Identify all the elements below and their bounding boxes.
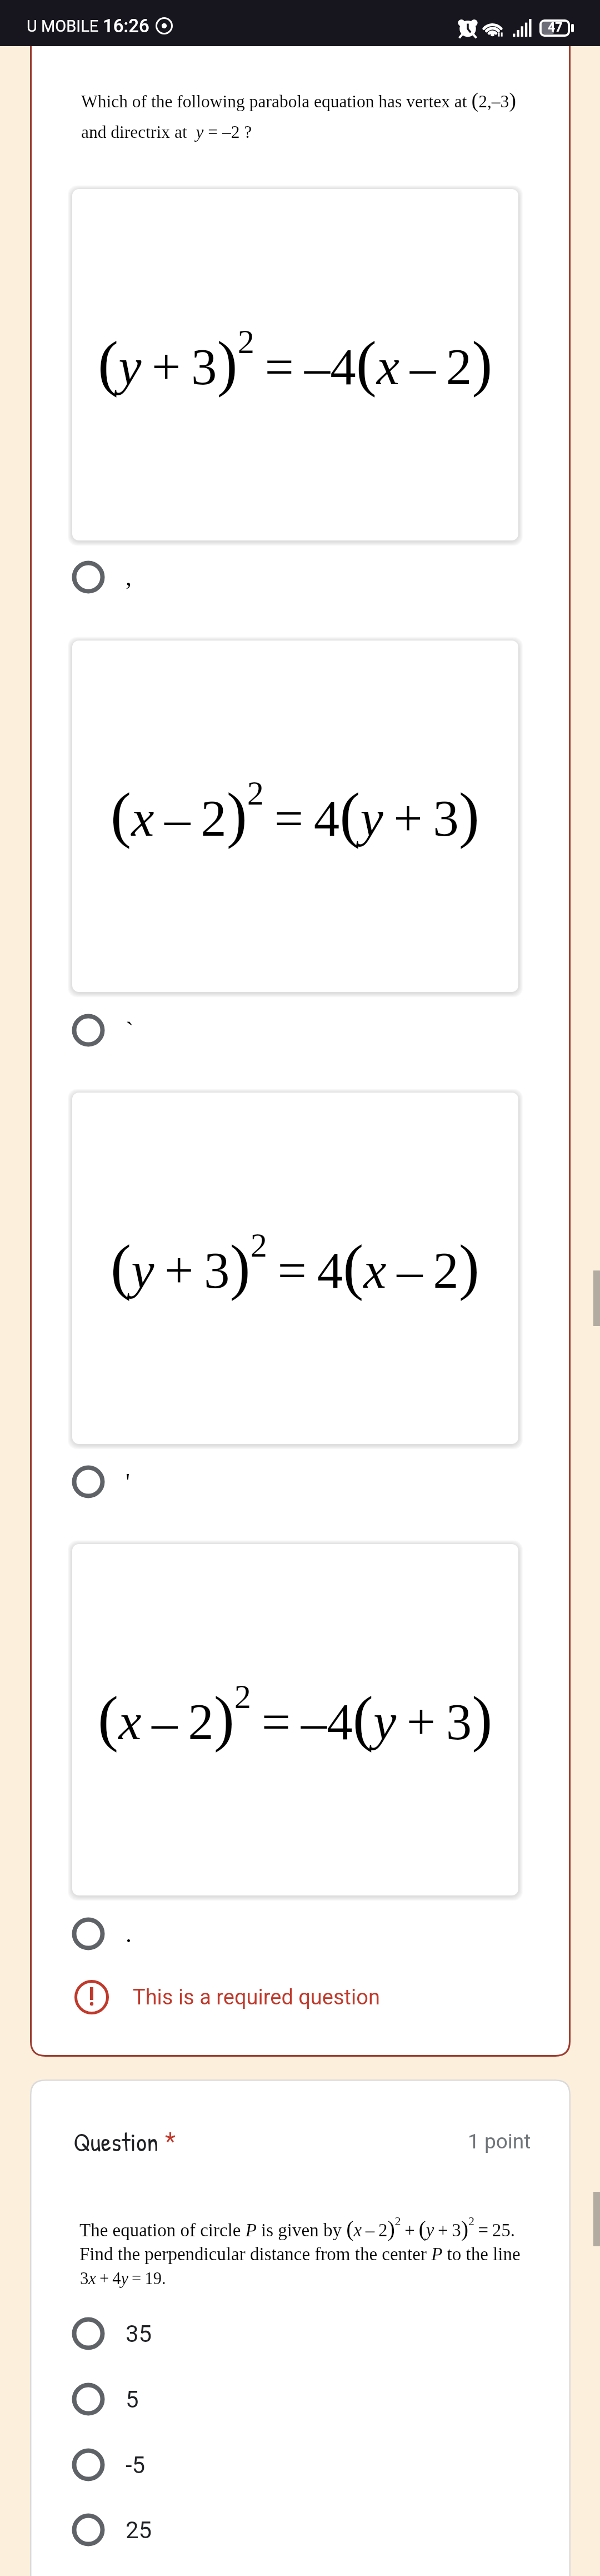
staticText: 47 [548, 20, 563, 35]
staticText: 35 [126, 2320, 152, 2347]
staticText: (y + 3)2 = 4(x – 2) [111, 1227, 480, 1301]
staticText: 1 point [468, 2130, 531, 2153]
button[interactable]: . [63, 1909, 452, 1959]
button[interactable]: ` [63, 1005, 452, 1055]
button[interactable]: Answer option image [68, 1088, 523, 1448]
staticText: , [126, 564, 132, 591]
other: Wi-Fi [483, 19, 504, 37]
staticText: -5 [126, 2451, 146, 2479]
staticText: ` [126, 1017, 134, 1044]
other: Error [74, 1980, 109, 2014]
staticText: 25 [126, 2517, 152, 2544]
button[interactable]: ' [63, 1457, 452, 1507]
staticText: Question [73, 2124, 165, 2160]
staticText: . [126, 1920, 132, 1948]
button[interactable]: 25 [63, 2505, 452, 2555]
staticText: Which of the following parabola equation… [81, 88, 517, 112]
button[interactable]: 5 [63, 2374, 452, 2424]
other: Battery 47 percent [541, 21, 574, 36]
staticText: U MOBILE [27, 17, 103, 36]
staticText: Find the perpendicular distance from the… [79, 2244, 521, 2265]
staticText: (x – 2)2 = –4(y + 3) [98, 1678, 493, 1753]
staticText: 16:26 [103, 15, 149, 37]
button[interactable]: Answer option image [68, 185, 523, 545]
staticText: (x – 2)2 = 4(y + 3) [111, 775, 480, 849]
other: WhatsApp [156, 17, 173, 34]
staticText: (y + 3)2 = –4(x – 2) [98, 323, 493, 398]
button[interactable]: 35 [63, 2309, 452, 2359]
button[interactable]: Answer option image [68, 1540, 523, 1900]
staticText: * [165, 2127, 176, 2156]
other: Alarm [459, 18, 477, 37]
button[interactable]: Answer option image [68, 636, 523, 996]
other: Signal [513, 19, 533, 37]
staticText: ' [126, 1468, 130, 1496]
button[interactable]: -5 [63, 2440, 452, 2490]
staticText: 5 [126, 2386, 139, 2413]
staticText: The equation of circle P is given by (x … [79, 2215, 515, 2241]
staticText: This is a required question [133, 1985, 380, 2010]
staticText: 3x + 4y = 19. [80, 2269, 166, 2288]
button[interactable]: , [63, 552, 452, 602]
button[interactable]: Error [74, 1977, 380, 2017]
staticText: and directrix at y = –2 ? [81, 122, 252, 142]
